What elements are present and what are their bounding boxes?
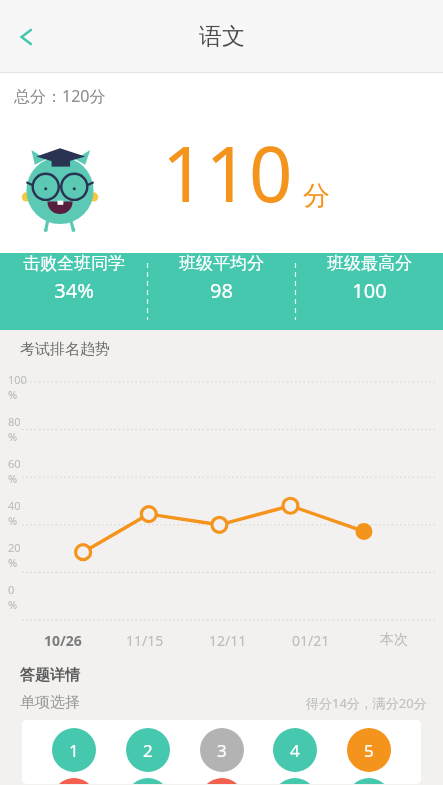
staticText: 考试排名趋势 — [20, 340, 110, 359]
staticText: 班级最高分 — [327, 253, 412, 274]
button[interactable]: 7 — [126, 778, 170, 784]
staticText: 98 — [210, 277, 233, 304]
staticText: 80 — [8, 414, 21, 429]
button[interactable]: 2 — [126, 728, 170, 772]
staticText: % — [8, 513, 18, 528]
staticText: 20 — [8, 540, 21, 555]
button[interactable]: 8 — [200, 778, 244, 784]
staticText: 语文 — [199, 22, 245, 51]
button[interactable]: 击败全班同学 — [0, 253, 147, 304]
staticText: 01/21 — [292, 631, 330, 650]
button[interactable]: 4 — [273, 728, 317, 772]
staticText: % — [8, 597, 18, 612]
staticText: 40 — [8, 498, 21, 513]
button[interactable]: 5 — [347, 728, 391, 772]
staticText: 100 — [352, 277, 387, 304]
staticText: 3 — [217, 739, 227, 762]
staticText: 11/15 — [126, 631, 164, 650]
staticText: 单项选择 — [20, 693, 80, 712]
staticText: 1 — [69, 739, 79, 762]
staticText: 2 — [143, 739, 153, 762]
button[interactable]: 6 — [52, 778, 96, 784]
staticText: 本次 — [380, 631, 408, 649]
button[interactable]: 10 — [347, 778, 391, 784]
staticText: 12/11 — [209, 631, 247, 650]
staticText: 总分：120分 — [14, 85, 106, 107]
staticText: % — [8, 471, 18, 486]
button[interactable]: 9 — [273, 778, 317, 784]
button[interactable]: 3 — [200, 728, 244, 772]
staticText: 100 — [8, 372, 27, 387]
staticText: 击败全班同学 — [23, 253, 125, 274]
button[interactable]: 1 — [52, 728, 96, 772]
button[interactable]: 班级最高分 — [296, 253, 443, 304]
staticText: 4 — [290, 739, 300, 762]
staticText: 班级平均分 — [179, 253, 264, 274]
staticText: 得分14分，满分20分 — [306, 694, 427, 712]
staticText: 60 — [8, 456, 21, 471]
staticText: 答题详情 — [20, 666, 80, 685]
button[interactable]: 班级平均分 — [148, 253, 295, 304]
staticText: 110 — [162, 121, 293, 225]
staticText: 10/26 — [44, 631, 82, 650]
staticText: 0 — [8, 582, 15, 597]
button[interactable]: Back — [0, 11, 52, 63]
staticText: % — [8, 555, 18, 570]
staticText: 分 — [303, 179, 330, 213]
staticText: % — [8, 429, 18, 444]
staticText: % — [8, 387, 18, 402]
staticText: 5 — [364, 739, 374, 762]
staticText: 34% — [54, 277, 94, 304]
